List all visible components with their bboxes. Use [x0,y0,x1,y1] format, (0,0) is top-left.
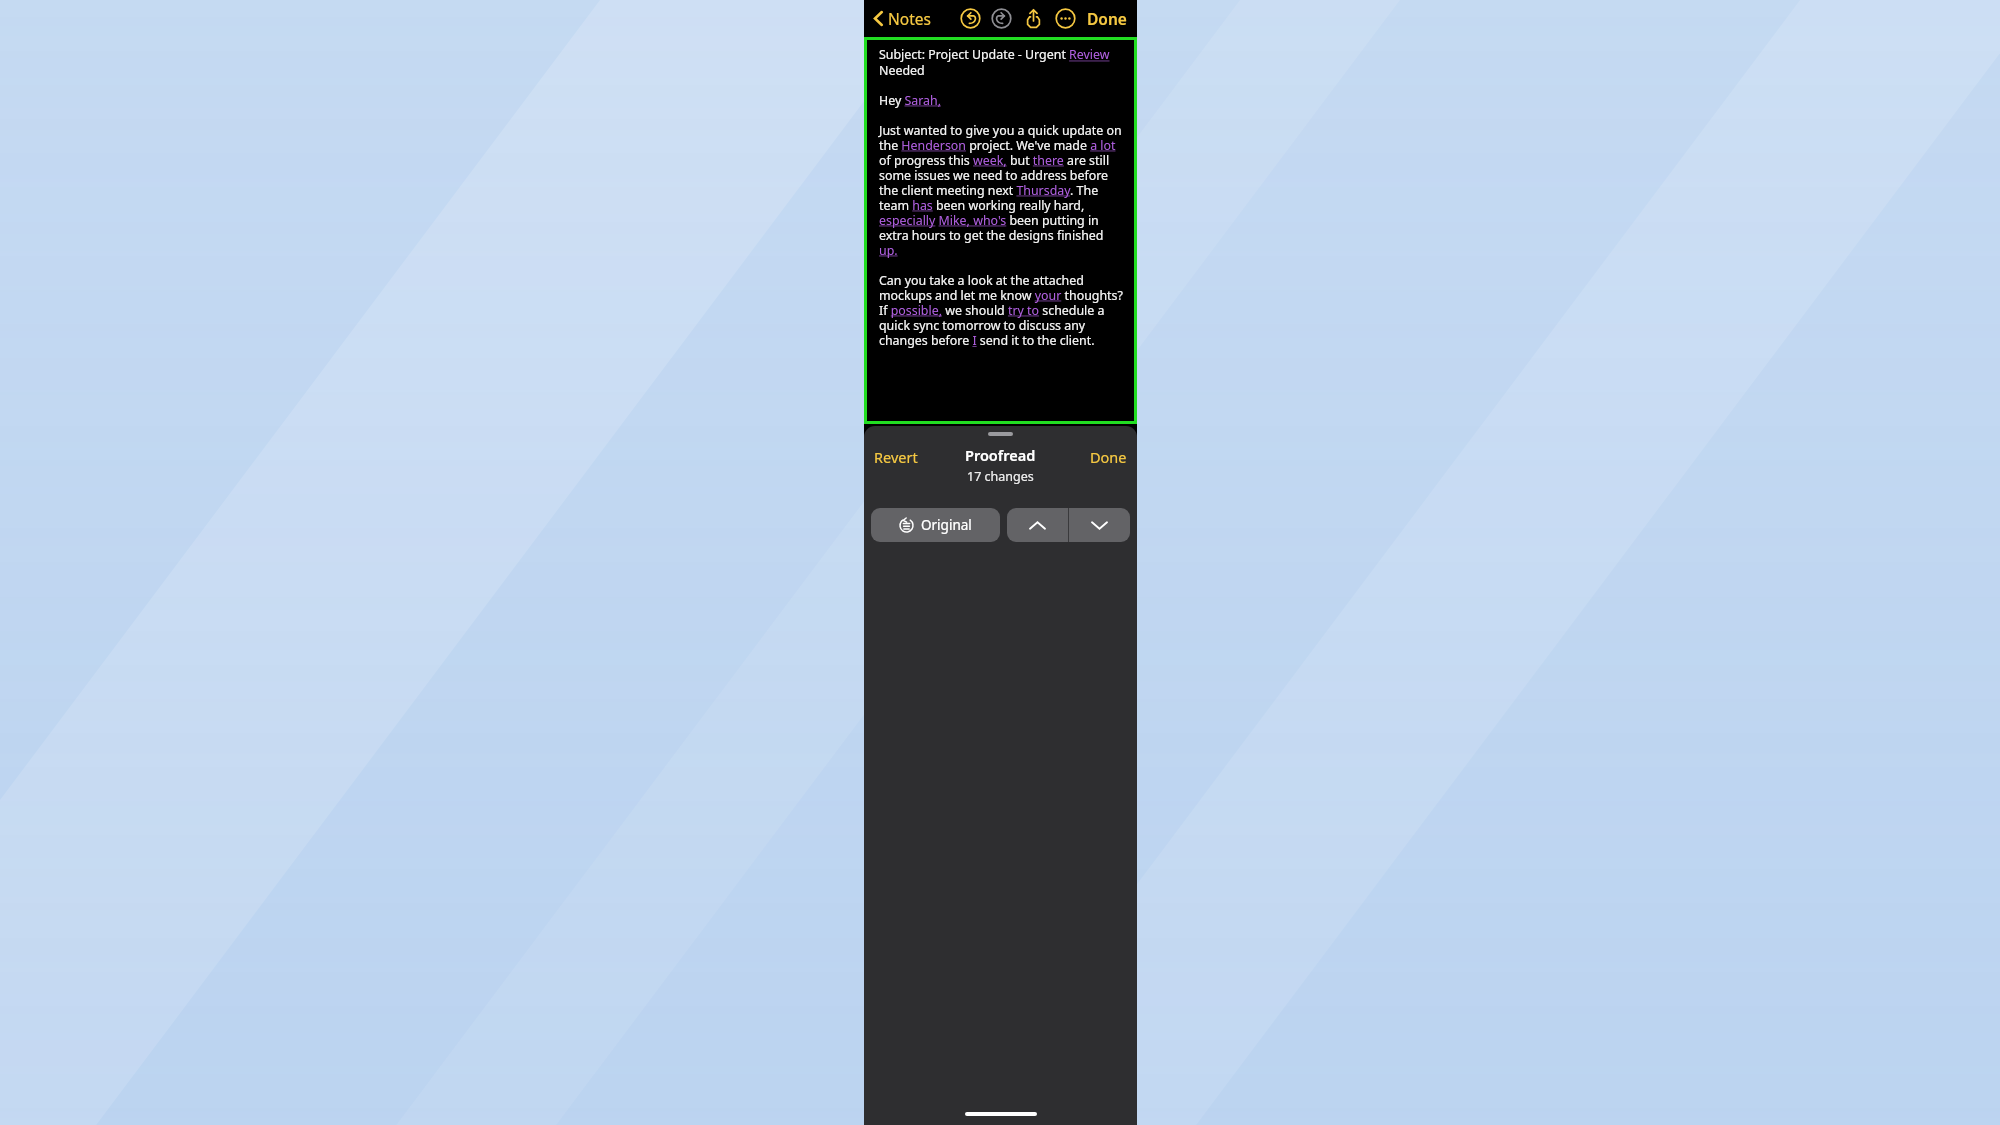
button[interactable]: Done [1087,445,1130,469]
staticText: Done [1090,447,1127,467]
button[interactable]: Redo [991,8,1012,29]
button[interactable]: Notes [870,4,934,33]
staticText: Original [921,516,972,534]
button[interactable]: Revert [871,445,921,469]
staticText: Revert [874,447,918,467]
button[interactable]: Share [1023,8,1044,29]
staticText: Done [1087,8,1127,29]
button[interactable]: Undo [960,8,981,29]
button[interactable]: Next change [1069,508,1130,542]
staticText: 17 changes [967,468,1034,485]
button[interactable]: Previous change [1007,508,1068,542]
staticText: Notes [888,8,931,29]
button[interactable]: More options [1055,8,1076,29]
button[interactable]: Done [1085,4,1129,33]
staticText: Proofread [965,445,1036,465]
staticText: Subject: Project Update - Urgent Review … [879,46,1124,349]
button[interactable]: Original [871,508,1000,542]
